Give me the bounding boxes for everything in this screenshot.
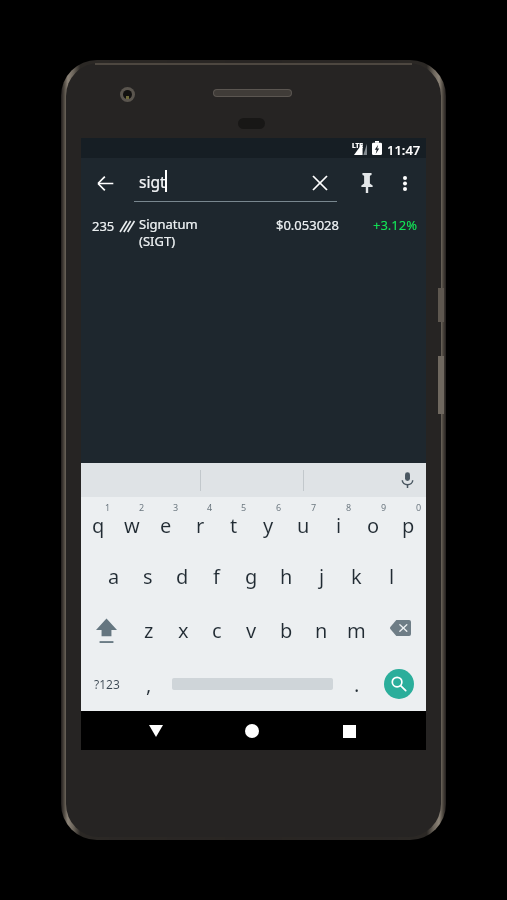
- staticText: u: [297, 512, 310, 539]
- staticText: p: [402, 512, 415, 539]
- staticText: $0.053028: [276, 216, 339, 234]
- button[interactable]: Back: [137, 712, 175, 750]
- button[interactable]: .: [339, 657, 374, 711]
- button[interactable]: 3: [149, 497, 183, 550]
- button[interactable]: v: [234, 603, 269, 657]
- button[interactable]: Home: [233, 712, 271, 750]
- staticText: f: [213, 563, 220, 590]
- staticText: ?123: [94, 676, 120, 692]
- staticText: d: [176, 563, 189, 590]
- button[interactable]: Voice input: [393, 466, 421, 494]
- button[interactable]: Recent apps: [330, 712, 368, 750]
- staticText: z: [144, 617, 154, 644]
- button[interactable]: Back: [89, 167, 121, 199]
- staticText: 11:47: [387, 141, 421, 159]
- button[interactable]: Pin: [351, 167, 383, 199]
- staticText: 5: [241, 501, 247, 513]
- staticText: (SIGT): [139, 232, 176, 250]
- button[interactable]: l: [374, 550, 409, 603]
- button[interactable]: 7: [286, 497, 321, 550]
- staticText: 9: [381, 501, 387, 513]
- staticText: j: [319, 563, 325, 590]
- button[interactable]: 2: [115, 497, 149, 550]
- staticText: w: [124, 512, 140, 539]
- button[interactable]: Space: [166, 657, 339, 711]
- staticText: 2: [139, 501, 145, 513]
- button[interactable]: 6: [251, 497, 286, 550]
- staticText: c: [212, 617, 222, 644]
- button[interactable]: s: [131, 550, 165, 603]
- button[interactable]: h: [269, 550, 304, 603]
- staticText: 235: [92, 217, 115, 235]
- staticText: r: [196, 512, 205, 539]
- staticText: +3.12%: [373, 216, 418, 234]
- staticText: x: [178, 617, 189, 644]
- button[interactable]: d: [165, 550, 199, 603]
- button[interactable]: 235: [81, 207, 426, 249]
- button[interactable]: x: [166, 603, 200, 657]
- staticText: n: [315, 617, 328, 644]
- button[interactable]: 9: [356, 497, 391, 550]
- button[interactable]: a: [97, 550, 131, 603]
- button[interactable]: Shift: [81, 603, 132, 657]
- staticText: 4: [207, 501, 213, 513]
- staticText: 8: [346, 501, 352, 513]
- staticText: 6: [276, 501, 282, 513]
- button[interactable]: j: [304, 550, 339, 603]
- staticText: .: [354, 671, 360, 698]
- button[interactable]: Clear search: [304, 167, 336, 199]
- button[interactable]: ?123: [81, 657, 132, 711]
- staticText: m: [347, 617, 366, 644]
- staticText: sigt: [139, 171, 166, 192]
- staticText: g: [245, 563, 258, 590]
- staticText: s: [143, 563, 153, 590]
- button[interactable]: ,: [132, 657, 166, 711]
- staticText: b: [280, 617, 293, 644]
- staticText: 7: [311, 501, 317, 513]
- button[interactable]: c: [200, 603, 234, 657]
- staticText: 0: [416, 501, 422, 513]
- staticText: i: [336, 512, 342, 539]
- staticText: o: [367, 512, 380, 539]
- staticText: h: [280, 563, 293, 590]
- staticText: v: [246, 617, 257, 644]
- staticText: t: [230, 512, 238, 539]
- button[interactable]: 0: [391, 497, 426, 550]
- button[interactable]: 1: [81, 497, 115, 550]
- staticText: e: [160, 512, 172, 539]
- button[interactable]: 4: [183, 497, 217, 550]
- staticText: 3: [173, 501, 179, 513]
- staticText: l: [389, 563, 395, 590]
- staticText: LTE: [352, 141, 363, 150]
- button[interactable]: n: [304, 603, 339, 657]
- button[interactable]: More options: [389, 167, 421, 199]
- button[interactable]: g: [234, 550, 269, 603]
- staticText: ,: [146, 671, 152, 698]
- staticText: k: [351, 563, 362, 590]
- button[interactable]: z: [132, 603, 166, 657]
- staticText: y: [263, 512, 274, 539]
- button[interactable]: Search: [384, 669, 414, 699]
- button[interactable]: k: [339, 550, 374, 603]
- button[interactable]: Backspace: [374, 603, 426, 657]
- button[interactable]: b: [269, 603, 304, 657]
- staticText: q: [92, 512, 105, 539]
- button[interactable]: m: [339, 603, 374, 657]
- staticText: 1: [105, 501, 111, 513]
- staticText: a: [108, 563, 120, 590]
- button[interactable]: 5: [217, 497, 251, 550]
- staticText: Signatum: [139, 215, 198, 233]
- button[interactable]: 8: [321, 497, 356, 550]
- button[interactable]: f: [199, 550, 234, 603]
